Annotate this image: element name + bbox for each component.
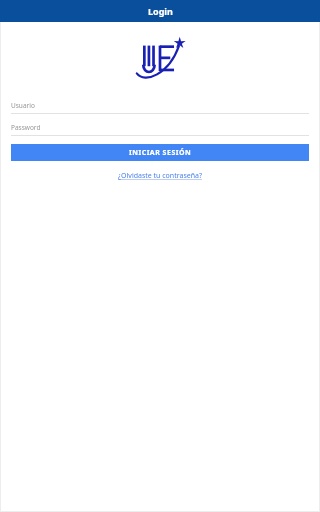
button[interactable]: INICIAR SESIÓN [11,144,309,161]
button[interactable]: Password [1,120,319,136]
button[interactable]: ¿Olvidaste tu contraseña? [114,170,206,182]
button[interactable]: Usuario [1,98,319,114]
staticText: INICIAR SESIÓN [129,148,192,158]
staticText: ¿Olvidaste tu contraseña? [118,171,202,181]
staticText: Login [148,5,173,17]
other: App logo [133,36,187,84]
staticText: Password [11,123,41,132]
staticText: Usuario [11,101,35,110]
